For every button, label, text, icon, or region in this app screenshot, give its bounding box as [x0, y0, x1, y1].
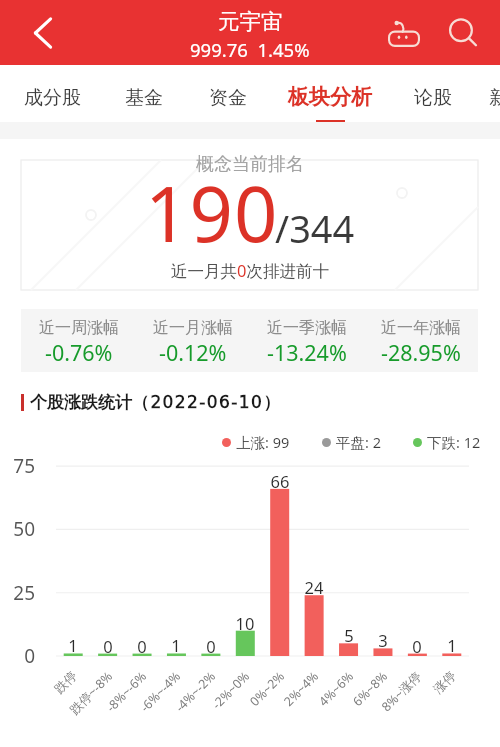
button[interactable]: 近一月涨幅 — [136, 309, 250, 372]
staticText: 资金 — [209, 86, 247, 110]
staticText: /344 — [275, 202, 355, 254]
staticText: 0 — [392, 635, 442, 657]
staticText: 4%~6% — [274, 668, 357, 747]
staticText: 基金 — [125, 86, 163, 110]
staticText: 平盘: 2 — [336, 432, 381, 452]
staticText: 元宇宙 — [218, 8, 283, 35]
staticText: 近一季涨幅 — [267, 318, 347, 338]
staticText: 涨停 — [377, 668, 459, 747]
button[interactable]: Search — [439, 2, 487, 64]
button[interactable]: 新闻 — [460, 65, 500, 122]
staticText: -0.12% — [159, 338, 227, 367]
staticText: 板块分析 — [288, 84, 372, 110]
staticText: 50 — [0, 516, 35, 542]
staticText: 近一月共0次排进前十 — [171, 259, 329, 282]
button[interactable]: 近一周涨幅 — [21, 309, 136, 372]
staticText: 6%~8% — [308, 668, 391, 747]
button[interactable]: 基金 — [96, 65, 192, 122]
staticText: 25 — [0, 580, 35, 606]
staticText: 10 — [220, 612, 270, 634]
staticText: 24 — [289, 576, 339, 598]
button[interactable]: 上涨: 99 — [222, 432, 290, 452]
staticText: 66 — [255, 470, 305, 492]
staticText: 5 — [324, 624, 374, 646]
staticText: -0.76% — [45, 338, 113, 367]
staticText: 0 — [0, 643, 35, 669]
staticText: 0 — [83, 635, 133, 657]
staticText: 近一年涨幅 — [381, 318, 461, 338]
staticText: 2%~4% — [239, 668, 322, 747]
staticText: 近一月涨幅 — [153, 318, 233, 338]
staticText: 1 — [48, 634, 98, 656]
staticText: 8%~涨停 — [342, 668, 425, 747]
staticText: -4%~-2% — [136, 668, 219, 747]
staticText: 999.76 1.45% — [190, 37, 310, 62]
staticText: 论股 — [414, 86, 452, 110]
button[interactable]: Back — [19, 0, 67, 65]
staticText: 跌停~-8% — [33, 668, 116, 747]
staticText: 1 — [427, 634, 477, 656]
staticText: 75 — [0, 453, 35, 479]
staticText: -6%~-4% — [101, 668, 184, 747]
button[interactable]: 近一季涨幅 — [250, 309, 364, 372]
button[interactable]: 平盘: 2 — [322, 432, 381, 452]
button[interactable]: 概念当前排名 — [21, 160, 478, 290]
staticText: 190 — [145, 161, 279, 265]
staticText: -2%~0% — [170, 668, 253, 747]
button[interactable]: 成分股 — [4, 65, 100, 122]
staticText: 个股涨跌统计（2022-06-10） — [30, 392, 282, 413]
button[interactable]: 下跌: 12 — [413, 432, 481, 452]
staticText: 1 — [151, 634, 201, 656]
staticText: -28.95% — [381, 338, 461, 367]
staticText: 3 — [358, 629, 408, 651]
button[interactable]: 板块分析 — [282, 65, 378, 122]
staticText: 跌停 — [0, 668, 80, 747]
button[interactable]: 论股 — [385, 65, 481, 122]
staticText: 上涨: 99 — [236, 432, 290, 452]
staticText: -13.24% — [267, 338, 347, 367]
staticText: -8%~-6% — [67, 668, 150, 747]
staticText: 下跌: 12 — [427, 432, 481, 452]
button[interactable]: 近一年涨幅 — [364, 309, 478, 372]
staticText: 成分股 — [24, 86, 81, 110]
button[interactable]: AI assistant — [380, 3, 428, 65]
staticText: 新闻 — [489, 86, 500, 110]
staticText: 0%~2% — [205, 668, 288, 747]
staticText: 0 — [186, 635, 236, 657]
staticText: 0 — [117, 635, 167, 657]
staticText: 概念当前排名 — [196, 153, 304, 176]
staticText: 近一周涨幅 — [39, 318, 119, 338]
button[interactable]: 资金 — [180, 65, 276, 122]
